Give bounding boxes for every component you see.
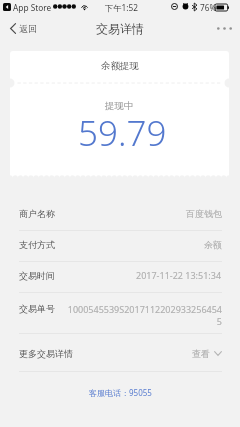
staticText: 客服电话：95055	[89, 387, 152, 398]
button[interactable]: 商户名称	[0, 203, 240, 223]
staticText: 余额提现	[101, 60, 139, 72]
staticText: 提现中	[105, 100, 134, 112]
staticText: 支付方式	[19, 239, 55, 250]
button[interactable]: 客服电话：95055	[0, 387, 240, 398]
button[interactable]: More options	[209, 17, 240, 40]
staticText: 1000545539S20171122029332564545	[66, 303, 222, 327]
button[interactable]: 支付方式	[0, 234, 240, 254]
staticText: 交易时间	[19, 270, 55, 281]
staticText: 百度钱包	[186, 208, 222, 219]
staticText: 查看	[192, 348, 210, 359]
staticText: 59.79	[78, 109, 167, 157]
staticText: 商户名称	[19, 208, 55, 219]
staticText: 交易单号	[19, 303, 55, 314]
staticText: 交易详情	[96, 21, 144, 36]
button[interactable]: 更多交易详情	[0, 342, 240, 364]
staticText: App Store	[13, 2, 52, 13]
button[interactable]: 交易单号	[0, 303, 240, 327]
staticText: 返回	[19, 23, 37, 34]
button[interactable]: 返回	[0, 17, 45, 40]
staticText: 76%	[200, 2, 217, 13]
staticText: 更多交易详情	[19, 348, 73, 359]
staticText: 余额	[204, 239, 222, 250]
staticText: 2017-11-22 13:51:34	[136, 269, 222, 281]
staticText: 下午1:52	[105, 2, 139, 13]
button[interactable]: 交易时间	[0, 265, 240, 285]
